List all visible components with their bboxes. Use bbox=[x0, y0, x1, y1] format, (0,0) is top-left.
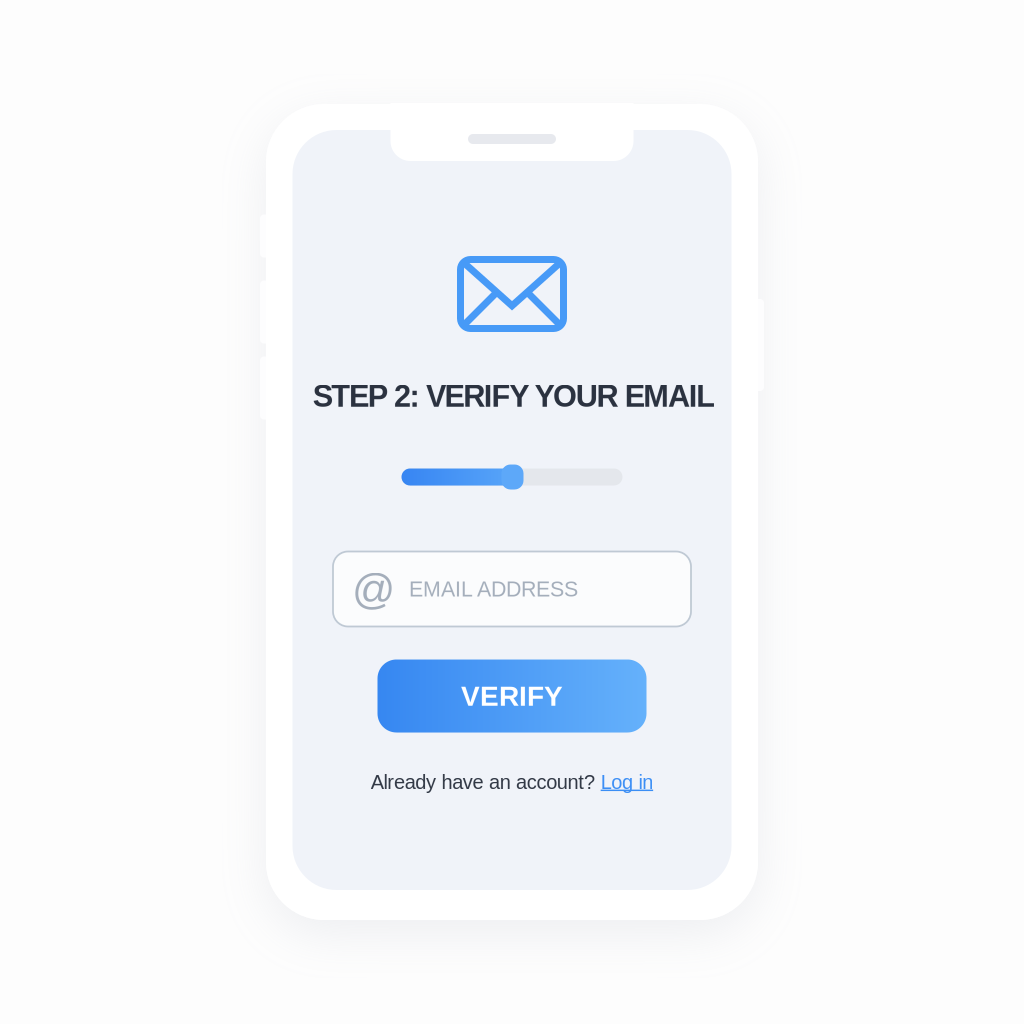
staticText: VERIFY bbox=[461, 680, 563, 712]
button[interactable]: VERIFY bbox=[377, 659, 646, 732]
staticText: EMAIL ADDRESS bbox=[409, 577, 578, 601]
button[interactable]: @ bbox=[333, 551, 691, 626]
staticText: @ bbox=[352, 565, 395, 613]
button[interactable]: Log in bbox=[601, 771, 653, 793]
staticText: STEP 2: VERIFY YOUR EMAIL bbox=[313, 379, 715, 413]
staticText: Log in bbox=[601, 771, 653, 793]
staticText: Already have an account? bbox=[371, 771, 601, 793]
